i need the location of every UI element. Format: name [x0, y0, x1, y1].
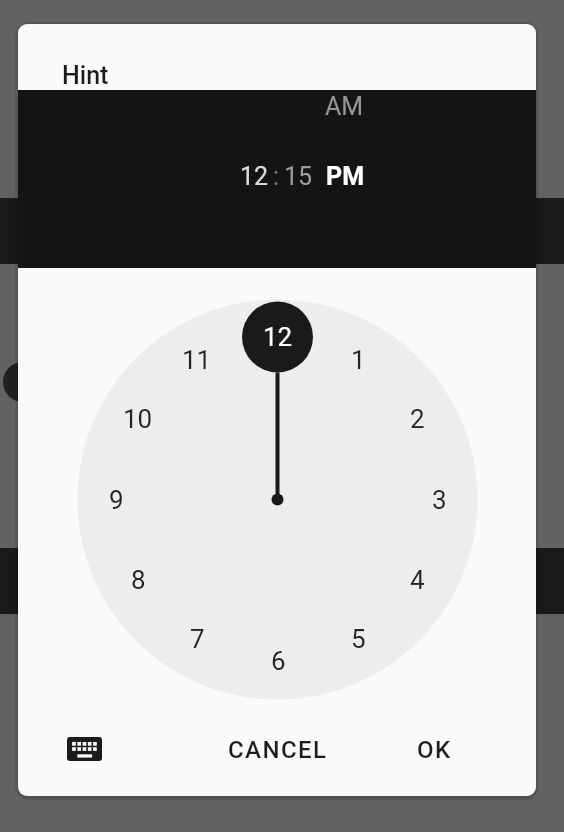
button[interactable]: 2: [395, 403, 439, 435]
button[interactable]: 11: [175, 344, 219, 376]
button[interactable]: 9: [94, 484, 138, 516]
staticText: 3: [432, 485, 447, 515]
button[interactable]: 7: [175, 623, 219, 655]
staticText: 1: [351, 345, 366, 375]
button[interactable]: 12: [240, 162, 269, 191]
button[interactable]: CANCEL: [226, 727, 330, 772]
staticText: 10: [123, 404, 153, 434]
button[interactable]: OK: [400, 727, 468, 772]
staticText: Hint: [62, 61, 109, 90]
button[interactable]: 15: [284, 162, 313, 191]
button[interactable]: 12: [256, 321, 300, 353]
staticText: 6: [271, 646, 286, 676]
button[interactable]: 5: [336, 623, 380, 655]
button[interactable]: [54, 725, 114, 773]
button[interactable]: 4: [395, 564, 439, 596]
staticText: 8: [131, 565, 146, 595]
staticText: 9: [109, 485, 124, 515]
staticText: CANCEL: [228, 736, 328, 764]
staticText: AM: [325, 92, 364, 121]
staticText: 12: [263, 322, 293, 352]
button[interactable]: 10: [116, 403, 160, 435]
staticText: 4: [410, 565, 425, 595]
staticText: 5: [351, 624, 366, 654]
staticText: 7: [190, 624, 205, 654]
button[interactable]: AM: [314, 91, 374, 122]
staticText: OK: [417, 736, 452, 764]
button[interactable]: 8: [116, 564, 160, 596]
button[interactable]: 3: [417, 484, 461, 516]
staticText: 2: [410, 404, 425, 434]
button[interactable]: 1: [336, 344, 380, 376]
staticText: :: [273, 162, 280, 191]
staticText: 11: [182, 345, 212, 375]
button[interactable]: 6: [256, 645, 300, 677]
button[interactable]: PM: [326, 162, 365, 191]
